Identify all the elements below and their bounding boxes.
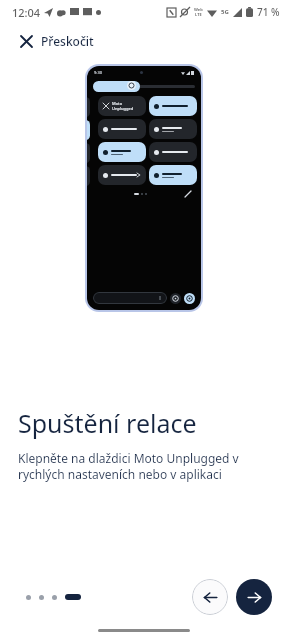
staticText: Klepněte na dlaždici Moto Unplugged v ry…	[18, 450, 270, 483]
staticText: Moto Unplugged	[112, 101, 141, 111]
button[interactable]	[149, 119, 197, 139]
staticText: Spuštění relace	[18, 406, 197, 440]
button[interactable]	[149, 142, 197, 162]
button[interactable]	[149, 165, 197, 185]
staticText: LTE	[195, 12, 202, 17]
button[interactable]: Back	[192, 579, 228, 615]
button[interactable]	[98, 142, 146, 162]
staticText: 9:30	[94, 70, 102, 75]
staticText: 12:04	[12, 5, 41, 20]
staticText: Web	[194, 7, 203, 12]
button[interactable]: Přeskočit	[16, 29, 98, 53]
button[interactable]	[98, 119, 146, 139]
button[interactable]: Moto Unplugged	[98, 96, 146, 116]
staticText: 5G	[221, 8, 229, 16]
button[interactable]: Next	[236, 579, 272, 615]
staticText: 71 %	[257, 5, 280, 19]
staticText: Přeskočit	[41, 33, 94, 49]
button[interactable]	[149, 96, 197, 116]
button[interactable]	[98, 165, 146, 185]
